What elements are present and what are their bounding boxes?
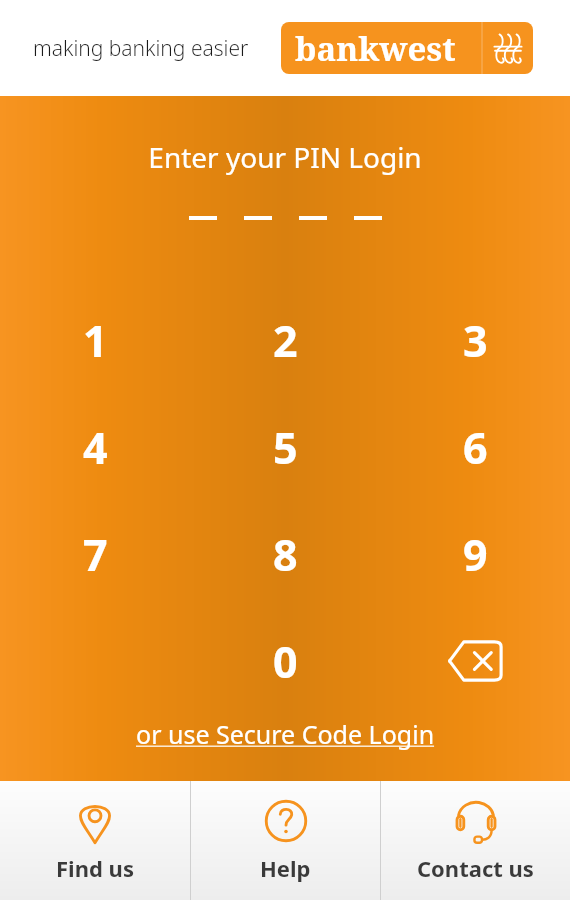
- staticText: 0: [273, 632, 298, 691]
- staticText: 4: [83, 418, 108, 477]
- button[interactable]: 7: [52, 511, 138, 597]
- staticText: making banking easier: [33, 34, 249, 63]
- staticText: Contact us: [417, 853, 534, 883]
- staticText: 5: [273, 418, 298, 477]
- staticText: 3: [463, 311, 488, 370]
- button[interactable]: 4: [52, 404, 138, 490]
- staticText: 6: [463, 418, 488, 477]
- button[interactable]: 5: [242, 404, 328, 490]
- button[interactable]: 8: [242, 511, 328, 597]
- staticText: Enter your PIN Login: [0, 138, 570, 176]
- button[interactable]: 1: [52, 297, 138, 383]
- button[interactable]: 3: [432, 297, 518, 383]
- staticText: 7: [83, 525, 108, 584]
- staticText: 1: [83, 311, 108, 370]
- staticText: 8: [273, 525, 298, 584]
- button[interactable]: 0: [242, 618, 328, 704]
- staticText: 9: [463, 525, 488, 584]
- button[interactable]: 2: [242, 297, 328, 383]
- button[interactable]: Help: [191, 781, 380, 900]
- staticText: Help: [260, 853, 311, 883]
- button[interactable]: 6: [432, 404, 518, 490]
- staticText: 2: [273, 311, 298, 370]
- button[interactable]: or use Secure Code Login: [130, 713, 441, 755]
- staticText: Find us: [56, 853, 134, 883]
- button[interactable]: Find us: [0, 781, 190, 900]
- button[interactable]: bankwest: [281, 22, 533, 74]
- button[interactable]: Backspace: [432, 618, 518, 704]
- button[interactable]: 9: [432, 511, 518, 597]
- button[interactable]: Contact us: [381, 781, 570, 900]
- staticText: bankwest: [295, 26, 456, 71]
- staticText: or use Secure Code Login: [136, 717, 435, 751]
